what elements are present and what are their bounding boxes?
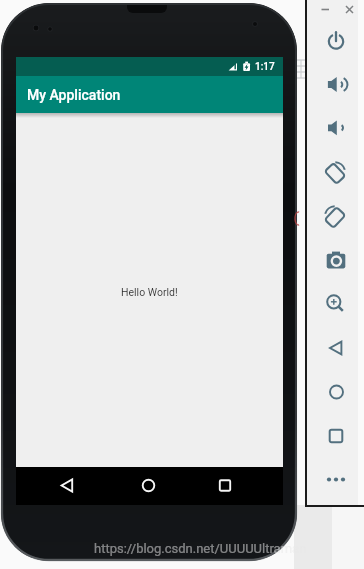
button[interactable] [320,70,350,100]
button[interactable] [320,287,350,317]
staticText: https://blog.csdn.net/UUUUUltraman [94,541,307,556]
button[interactable] [342,2,358,18]
button[interactable] [320,26,350,56]
button[interactable] [317,2,333,18]
button[interactable] [320,464,350,494]
button[interactable] [320,377,350,407]
staticText: 1:17 [255,61,275,73]
button[interactable] [132,469,166,503]
button[interactable] [320,158,350,188]
staticText: My Application [27,87,121,103]
button[interactable] [320,202,350,232]
button[interactable] [320,421,350,451]
button[interactable] [320,245,350,275]
button[interactable] [208,469,242,503]
button[interactable]: My Application [16,76,283,113]
button[interactable] [320,113,350,143]
button[interactable] [51,469,85,503]
staticText: Hello World! [121,286,178,298]
button[interactable] [320,333,350,363]
